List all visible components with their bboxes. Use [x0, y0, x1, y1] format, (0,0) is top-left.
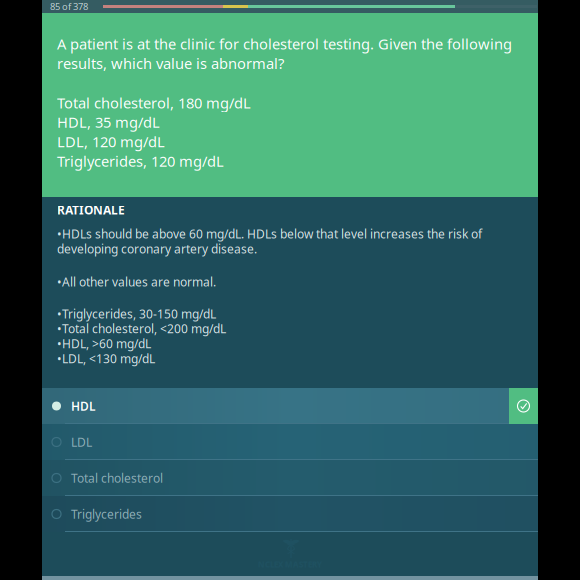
staticText: •Total cholesterol, <200 mg/dL — [57, 321, 226, 337]
staticText: •Triglycerides, 30-150 mg/dL — [57, 306, 216, 322]
staticText: A patient is at the clinic for cholester… — [57, 34, 512, 53]
staticText: Total cholesterol, 180 mg/dL — [57, 93, 251, 112]
staticText: Triglycerides, 120 mg/dL — [57, 151, 224, 171]
staticText: •HDLs should be above 60 mg/dL. HDLs bel… — [57, 226, 482, 242]
button[interactable]: HDL — [42, 388, 538, 424]
staticText: HDL, 35 mg/dL — [57, 112, 160, 132]
button[interactable]: LDL — [42, 424, 538, 460]
staticText: HDL — [71, 398, 96, 414]
staticText: Total cholesterol — [71, 470, 163, 486]
staticText: RATIONALE — [57, 202, 125, 218]
button[interactable]: Triglycerides — [42, 496, 538, 532]
staticText: Triglycerides — [71, 506, 142, 522]
staticText: 85 of 378 — [50, 0, 88, 13]
staticText: LDL — [71, 434, 92, 450]
staticText: results, which value is abnormal? — [57, 53, 284, 73]
staticText: •HDL, >60 mg/dL — [57, 336, 151, 352]
staticText: •All other values are normal. — [57, 274, 216, 290]
button[interactable]: Total cholesterol — [42, 460, 538, 496]
staticText: LDL, 120 mg/dL — [57, 132, 165, 151]
staticText: developing coronary artery disease. — [57, 241, 257, 257]
staticText: •LDL, <130 mg/dL — [57, 351, 155, 366]
